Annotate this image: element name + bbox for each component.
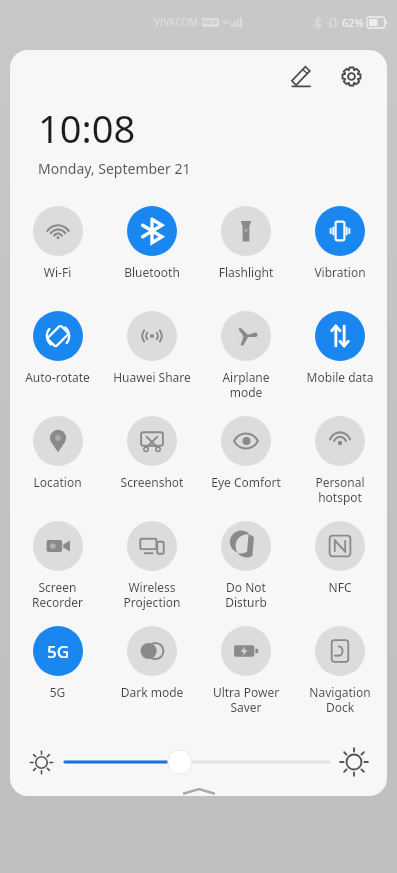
button[interactable]: Location — [10, 416, 105, 521]
staticText: Location — [10, 474, 105, 490]
staticText: 5G — [47, 640, 70, 663]
staticText: Bluetooth — [105, 264, 199, 280]
staticText: NFC — [293, 579, 387, 595]
button[interactable] — [32, 737, 365, 787]
staticText: Airplane mode — [199, 369, 293, 400]
staticText: Flashlight — [199, 264, 293, 280]
staticText: 4G — [222, 18, 230, 26]
staticText: Screen Recorder — [10, 579, 105, 610]
staticText: 62% — [342, 15, 364, 30]
button[interactable]: Mobile data — [293, 311, 387, 416]
staticText: Huawei Share — [105, 369, 199, 385]
staticText: Screenshot — [105, 474, 199, 490]
staticText: 5G — [10, 684, 105, 700]
staticText: Monday, September 21 — [38, 159, 191, 178]
button[interactable]: Auto-rotate — [10, 311, 105, 416]
staticText: Dark mode — [105, 684, 199, 700]
staticText: Do Not Disturb — [199, 579, 293, 610]
staticText: Mobile data — [293, 369, 387, 385]
button[interactable]: Airplane mode — [199, 311, 293, 416]
staticText: Personal hotspot — [293, 474, 387, 505]
button[interactable]: Screen Recorder — [10, 521, 105, 626]
button[interactable]: Bluetooth — [105, 206, 199, 311]
staticText: Wi-Fi — [10, 264, 105, 280]
button[interactable]: Personal hotspot — [293, 416, 387, 521]
button[interactable]: Flashlight — [199, 206, 293, 311]
button[interactable]: Wireless Projection — [105, 521, 199, 626]
button[interactable]: Wi-Fi — [10, 206, 105, 311]
staticText: VIVACOM — [154, 15, 199, 29]
staticText: VoLTE — [203, 19, 218, 26]
staticText: Eye Comfort — [199, 474, 293, 490]
button[interactable]: Navigation Dock — [293, 626, 387, 731]
staticText: Auto-rotate — [10, 369, 105, 385]
button[interactable]: Vibration — [293, 206, 387, 311]
button[interactable]: Do Not Disturb — [199, 521, 293, 626]
button[interactable]: Dark mode — [105, 626, 199, 731]
button[interactable]: Edit — [281, 56, 321, 96]
button[interactable]: Screenshot — [105, 416, 199, 521]
button[interactable]: Eye Comfort — [199, 416, 293, 521]
button[interactable]: Settings — [331, 56, 371, 96]
staticText: Navigation Dock — [293, 684, 387, 715]
button[interactable]: NFC — [293, 521, 387, 626]
button[interactable]: Huawei Share — [105, 311, 199, 416]
staticText: Wireless Projection — [105, 579, 199, 610]
button[interactable]: Ultra Power Saver — [199, 626, 293, 731]
staticText: Vibration — [293, 264, 387, 280]
staticText: 10:08 — [38, 102, 136, 154]
staticText: Ultra Power Saver — [199, 684, 293, 715]
button[interactable]: 5G — [10, 626, 105, 731]
